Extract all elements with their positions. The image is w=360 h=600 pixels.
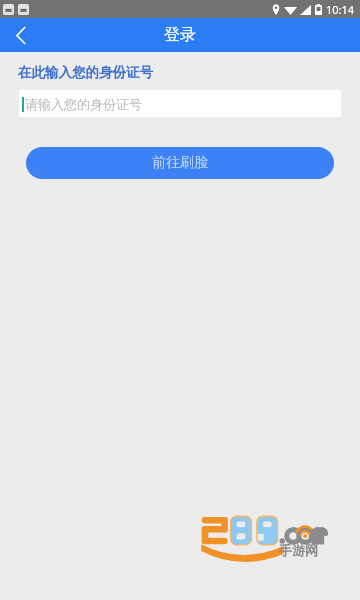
staticText: 手游网 <box>279 542 318 558</box>
staticText: 前往刷脸 <box>152 154 208 172</box>
staticText: 登录 <box>164 25 196 45</box>
button[interactable]: 请输入您的身份证号 <box>18 89 342 118</box>
staticText: 请输入您的身份证号 <box>25 96 142 112</box>
staticText: 在此输入您的身份证号 <box>18 64 153 81</box>
button[interactable]: Back <box>0 18 42 52</box>
staticText: 10:14 <box>326 2 355 17</box>
button[interactable]: 前往刷脸 <box>26 147 334 179</box>
